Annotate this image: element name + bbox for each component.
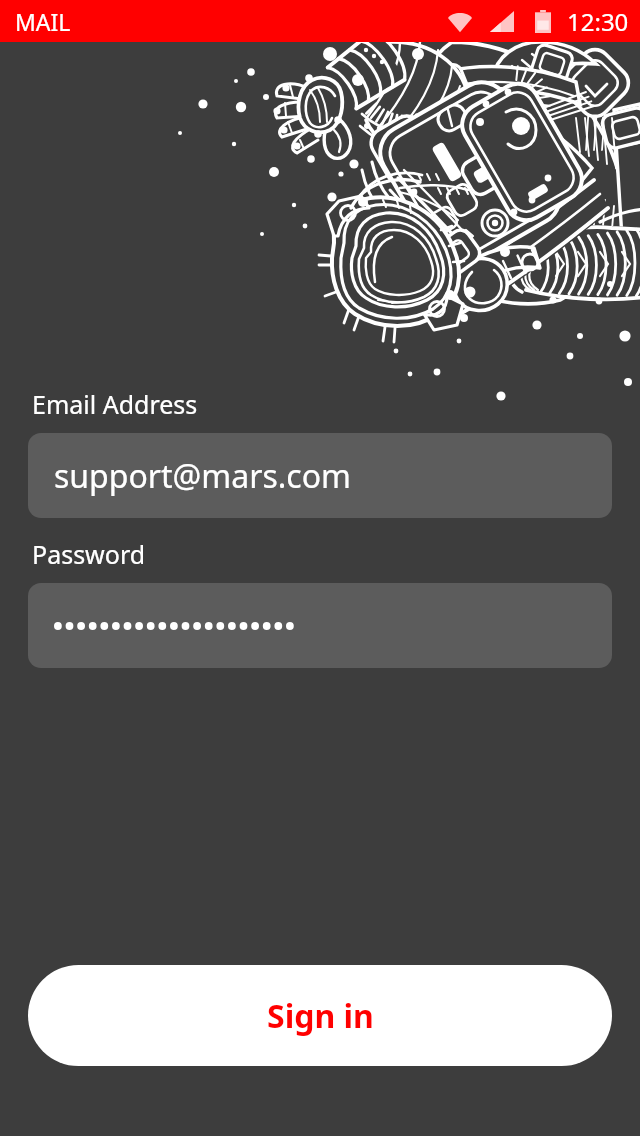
- staticText: MAIL: [15, 6, 71, 37]
- staticText: 12:30: [567, 5, 629, 38]
- other: Signal: [490, 11, 514, 32]
- button[interactable]: [28, 583, 612, 668]
- staticText: Email Address: [32, 387, 198, 421]
- other: Wi-Fi: [448, 11, 472, 33]
- other: Battery: [535, 10, 551, 33]
- staticText: Password: [32, 537, 146, 571]
- staticText: Sign in: [267, 994, 374, 1038]
- button[interactable]: support@mars.com: [28, 433, 612, 518]
- button[interactable]: Sign in: [28, 965, 612, 1066]
- staticText: support@mars.com: [54, 454, 351, 498]
